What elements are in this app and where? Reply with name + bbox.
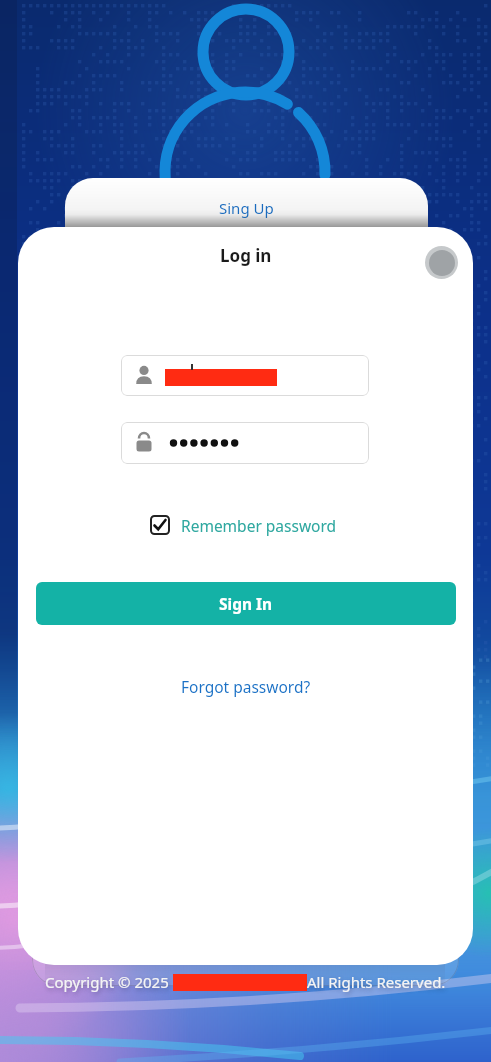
staticText: Sing Up bbox=[219, 198, 274, 218]
button[interactable]: Remember password bbox=[150, 510, 337, 540]
button[interactable] bbox=[121, 355, 369, 396]
staticText: Copyright © 2025 bbox=[45, 972, 173, 992]
button[interactable] bbox=[121, 422, 369, 464]
button[interactable]: Sign In bbox=[36, 582, 456, 625]
button[interactable]: Forgot password? bbox=[181, 676, 311, 697]
staticText: Remember password bbox=[181, 515, 337, 536]
button[interactable]: Sing Up bbox=[65, 178, 428, 268]
staticText: All Rights Reserved. bbox=[307, 972, 446, 992]
staticText: Log in bbox=[220, 244, 272, 267]
staticText: Sign In bbox=[219, 593, 273, 614]
